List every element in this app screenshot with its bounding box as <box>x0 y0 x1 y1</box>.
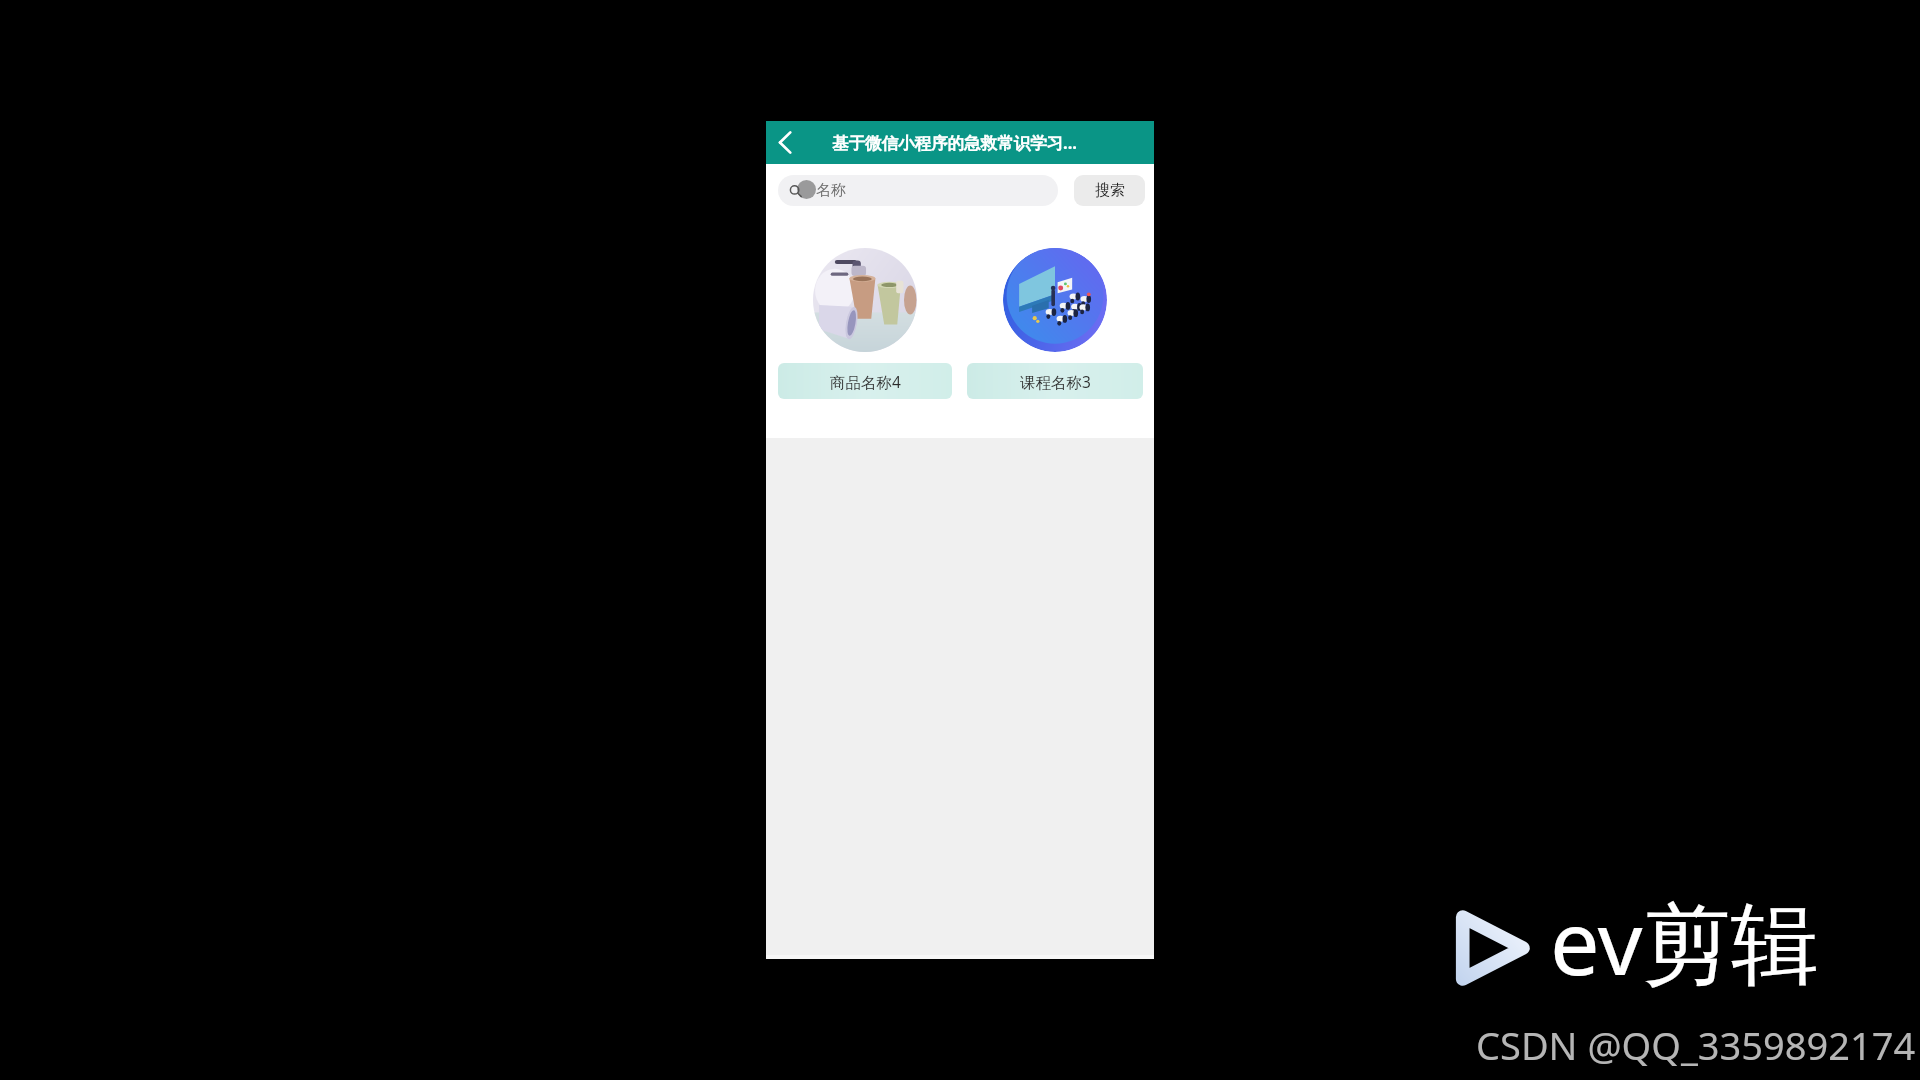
staticText: 商品名称4 <box>830 371 901 392</box>
button[interactable]: 名称 <box>778 175 1058 206</box>
staticText: CSDN @QQ_3359892174 <box>1476 1019 1916 1071</box>
staticText: 基于微信小程序的急救常识学习... <box>832 131 1077 154</box>
button[interactable]: Back <box>766 121 803 164</box>
staticText: 名称 <box>816 181 846 200</box>
staticText: 课程名称3 <box>1020 371 1091 392</box>
button[interactable]: 课程名称3 <box>967 246 1143 399</box>
staticText: ev剪辑 <box>1550 881 1819 1001</box>
button[interactable]: 商品名称4 <box>778 246 952 399</box>
button[interactable]: 搜索 <box>1074 175 1145 206</box>
staticText: 搜索 <box>1095 181 1125 200</box>
